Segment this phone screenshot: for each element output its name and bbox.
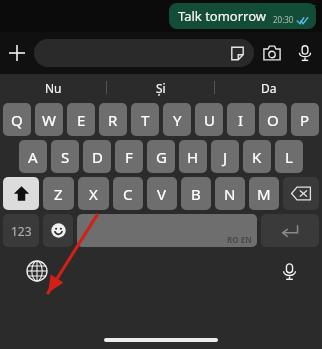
button[interactable]: B <box>181 177 211 210</box>
staticText: Q <box>11 110 23 130</box>
button[interactable]: H <box>179 140 207 173</box>
button[interactable]: Da <box>215 74 322 101</box>
staticText: G <box>156 147 167 167</box>
staticText: H <box>187 147 199 167</box>
staticText: 20:30 <box>273 14 294 25</box>
staticText: Z <box>54 184 63 204</box>
staticText: B <box>191 184 201 204</box>
button[interactable]: C <box>113 177 143 210</box>
button[interactable]: F <box>115 140 143 173</box>
staticText: T <box>141 110 150 130</box>
staticText: RO EN <box>227 234 252 245</box>
button[interactable]: Camera <box>254 35 290 71</box>
staticText: C <box>123 184 133 204</box>
button[interactable]: T <box>131 103 159 136</box>
button[interactable]: Enter <box>261 214 319 247</box>
staticText: Da <box>261 80 277 96</box>
button[interactable]: M <box>249 177 279 210</box>
button[interactable]: Talk tomorrow <box>169 3 316 29</box>
button[interactable]: E <box>67 103 95 136</box>
staticText: Și <box>156 80 166 96</box>
staticText: K <box>252 147 262 167</box>
button[interactable]: Sticker <box>224 40 250 66</box>
staticText: J <box>223 147 228 167</box>
staticText: A <box>28 147 38 167</box>
button[interactable]: K <box>243 140 271 173</box>
staticText: I <box>238 110 244 130</box>
button[interactable]: A <box>19 140 47 173</box>
button[interactable]: Shift <box>3 177 39 210</box>
staticText: V <box>157 184 167 204</box>
button[interactable]: S <box>51 140 79 173</box>
staticText: W <box>42 110 56 130</box>
button[interactable]: Backspace <box>283 177 319 210</box>
button[interactable]: Voice message <box>290 38 320 68</box>
button[interactable]: Space <box>77 214 257 247</box>
button[interactable]: Q <box>3 103 31 136</box>
button[interactable]: 123 <box>3 214 39 247</box>
button[interactable]: I <box>227 103 255 136</box>
button[interactable]: Y <box>163 103 191 136</box>
button[interactable]: Voice input <box>274 256 304 286</box>
staticText: N <box>224 184 236 204</box>
staticText: U <box>204 110 215 130</box>
button[interactable]: U <box>195 103 223 136</box>
staticText: L <box>285 147 293 167</box>
button[interactable]: O <box>259 103 287 136</box>
staticText: Y <box>173 110 182 130</box>
button[interactable]: W <box>35 103 63 136</box>
button[interactable]: Attach <box>0 36 34 70</box>
button[interactable]: R <box>99 103 127 136</box>
staticText: Nu <box>45 80 62 96</box>
staticText: X <box>89 184 98 204</box>
staticText: D <box>92 147 103 167</box>
button[interactable]: D <box>83 140 111 173</box>
button[interactable]: Emoji <box>43 214 73 247</box>
button[interactable]: Nu <box>0 74 106 101</box>
staticText: P <box>300 110 310 130</box>
button[interactable]: Z <box>43 177 74 210</box>
staticText: F <box>125 147 133 167</box>
button[interactable]: P <box>291 103 319 136</box>
staticText: R <box>108 110 118 130</box>
button[interactable]: L <box>275 140 303 173</box>
staticText: Talk tomorrow <box>178 7 267 25</box>
button[interactable]: X <box>78 177 109 210</box>
button[interactable]: G <box>147 140 175 173</box>
staticText: O <box>267 110 279 130</box>
staticText: M <box>257 184 271 204</box>
button[interactable]: Și <box>107 74 214 101</box>
staticText: S <box>61 147 70 167</box>
button[interactable]: N <box>215 177 245 210</box>
staticText: 123 <box>11 223 32 239</box>
button[interactable]: Change keyboard language <box>22 256 52 286</box>
button[interactable]: J <box>211 140 239 173</box>
button[interactable]: Sticker <box>34 39 254 67</box>
staticText: E <box>77 110 86 130</box>
button[interactable]: V <box>147 177 177 210</box>
